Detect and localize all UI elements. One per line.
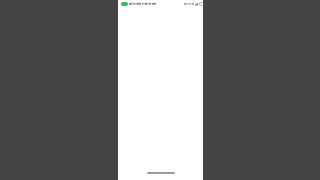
button[interactable]: Home gesture handle [147,172,175,174]
button[interactable]: Status chip [121,2,128,6]
